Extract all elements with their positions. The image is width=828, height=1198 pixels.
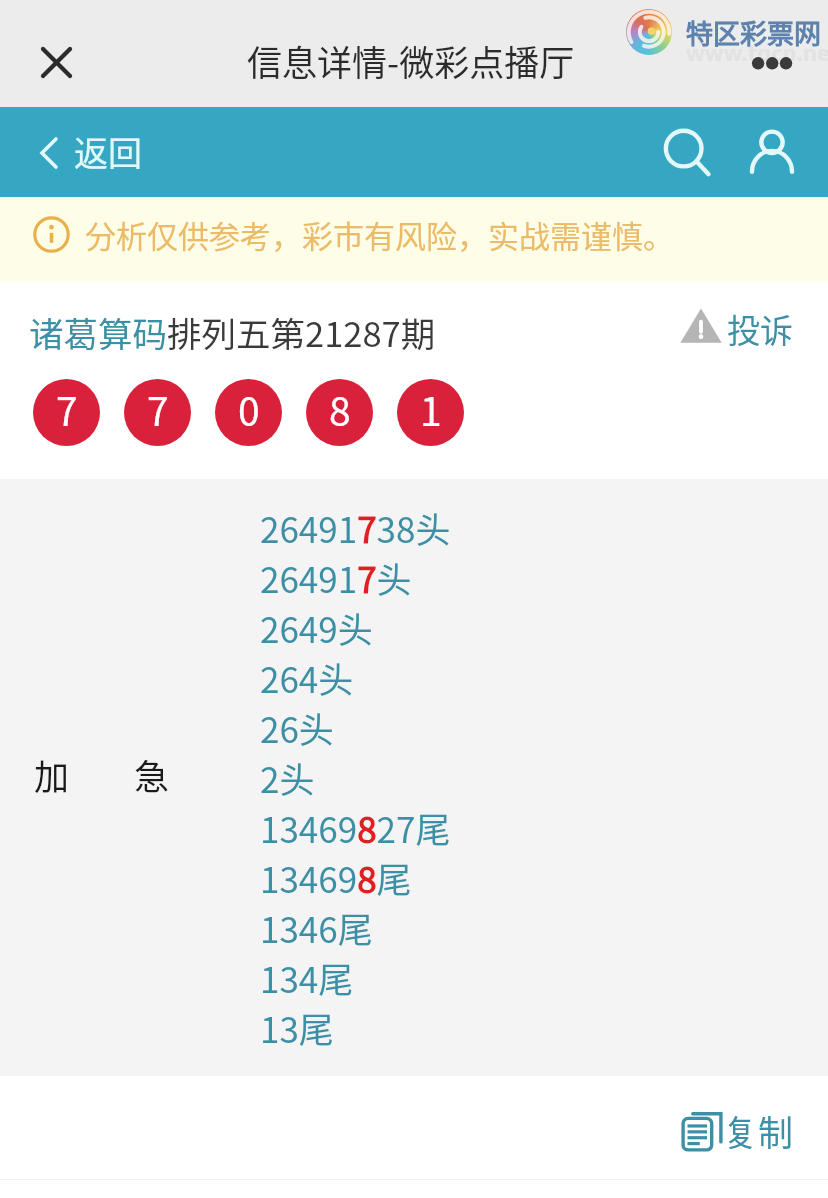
staticText: 0 [238,381,260,437]
staticText: 7 [147,381,169,437]
staticText: 诸葛算码排列五第21287期 [29,307,436,357]
button[interactable]: Close [27,33,86,92]
button[interactable]: Search [652,118,724,190]
staticText: 7 [56,381,78,437]
staticText: 264头 [260,652,354,702]
staticText: 13尾 [260,1002,334,1052]
staticText: 复制 [723,1105,794,1156]
staticText: 加 [34,749,70,800]
staticText: 8 [329,381,351,437]
staticText: 264917头 [260,552,412,602]
staticText: 1 [420,381,442,437]
staticText: 投诉 [727,305,793,353]
button[interactable]: 复制 [676,1101,796,1157]
staticText: 1346尾 [260,902,373,952]
button[interactable]: More options [740,44,800,82]
staticText: 134698尾 [260,852,412,902]
staticText: www.tqcp.net [686,37,828,67]
button[interactable]: 返回 [40,128,142,177]
staticText: 26491738头 [260,502,451,552]
staticText: 分析仅供参考，彩市有风险，实战需谨慎。 [85,212,674,257]
button[interactable]: Account [738,118,810,190]
staticText: 26头 [260,702,334,752]
staticText: 134尾 [260,952,354,1002]
staticText: 13469827尾 [260,802,451,852]
staticText: 2649头 [260,602,373,652]
staticText: 返回 [74,127,142,176]
staticText: 特区彩票网 [686,13,821,52]
staticText: 信息详情-微彩点播厅 [247,35,575,86]
button[interactable]: 投诉 [679,305,793,353]
staticText: 2头 [260,752,315,802]
staticText: 急 [134,749,170,800]
